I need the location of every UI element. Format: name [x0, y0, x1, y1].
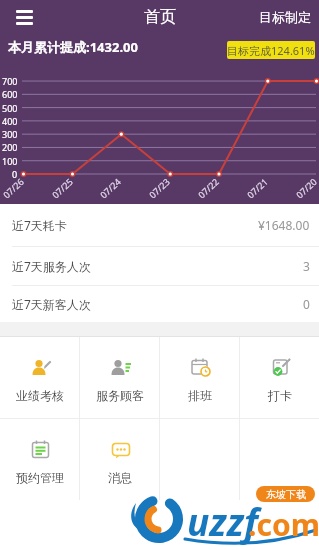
- staticText: 07/24: [97, 175, 123, 200]
- staticText: 0: [303, 296, 310, 312]
- staticText: 业绩考核: [16, 388, 64, 403]
- staticText: 07/25: [49, 175, 75, 200]
- button[interactable]: 打卡: [240, 337, 319, 418]
- button[interactable]: 业绩考核: [0, 337, 79, 418]
- staticText: 排班: [188, 388, 212, 403]
- button[interactable]: 服务顾客: [80, 337, 159, 418]
- staticText: 300: [2, 128, 18, 140]
- staticText: 消息: [108, 470, 132, 485]
- staticText: 400: [2, 115, 18, 127]
- button[interactable]: 近7天新客人次: [0, 286, 319, 322]
- staticText: 07/20: [293, 175, 319, 200]
- button[interactable]: 目标制定: [251, 3, 319, 31]
- button[interactable]: 目标完成124.61%: [227, 41, 315, 59]
- staticText: 近7天耗卡: [12, 217, 67, 233]
- staticText: 0: [12, 168, 18, 180]
- staticText: 07/26: [0, 175, 26, 200]
- button[interactable]: 近7天服务人次: [0, 247, 319, 285]
- staticText: 预约管理: [16, 470, 64, 485]
- button[interactable]: 消息: [80, 419, 159, 500]
- staticText: 500: [2, 102, 18, 114]
- staticText: 目标完成124.61%: [227, 43, 315, 58]
- staticText: 07/21: [244, 175, 270, 200]
- button[interactable]: 预约管理: [0, 419, 79, 500]
- staticText: .com: [248, 504, 319, 545]
- staticText: uzzf: [187, 496, 258, 546]
- staticText: 首页: [144, 7, 176, 27]
- staticText: 东坡下载: [266, 488, 306, 501]
- staticText: 200: [2, 141, 18, 153]
- staticText: 3: [303, 258, 310, 274]
- staticText: 07/22: [195, 175, 221, 200]
- staticText: ¥1648.00: [258, 217, 310, 233]
- staticText: 打卡: [268, 388, 292, 403]
- staticText: 700: [2, 75, 18, 87]
- staticText: 服务顾客: [96, 388, 144, 403]
- button[interactable]: 排班: [160, 337, 239, 418]
- staticText: 目标制定: [259, 9, 311, 25]
- button[interactable]: [8, 3, 40, 31]
- staticText: 本月累计提成:1432.00: [8, 38, 138, 56]
- button[interactable]: 近7天耗卡: [0, 204, 319, 246]
- staticText: 近7天服务人次: [12, 258, 91, 274]
- staticText: 600: [2, 88, 18, 100]
- staticText: 近7天新客人次: [12, 296, 91, 312]
- staticText: 07/23: [146, 175, 172, 200]
- staticText: 100: [2, 155, 18, 167]
